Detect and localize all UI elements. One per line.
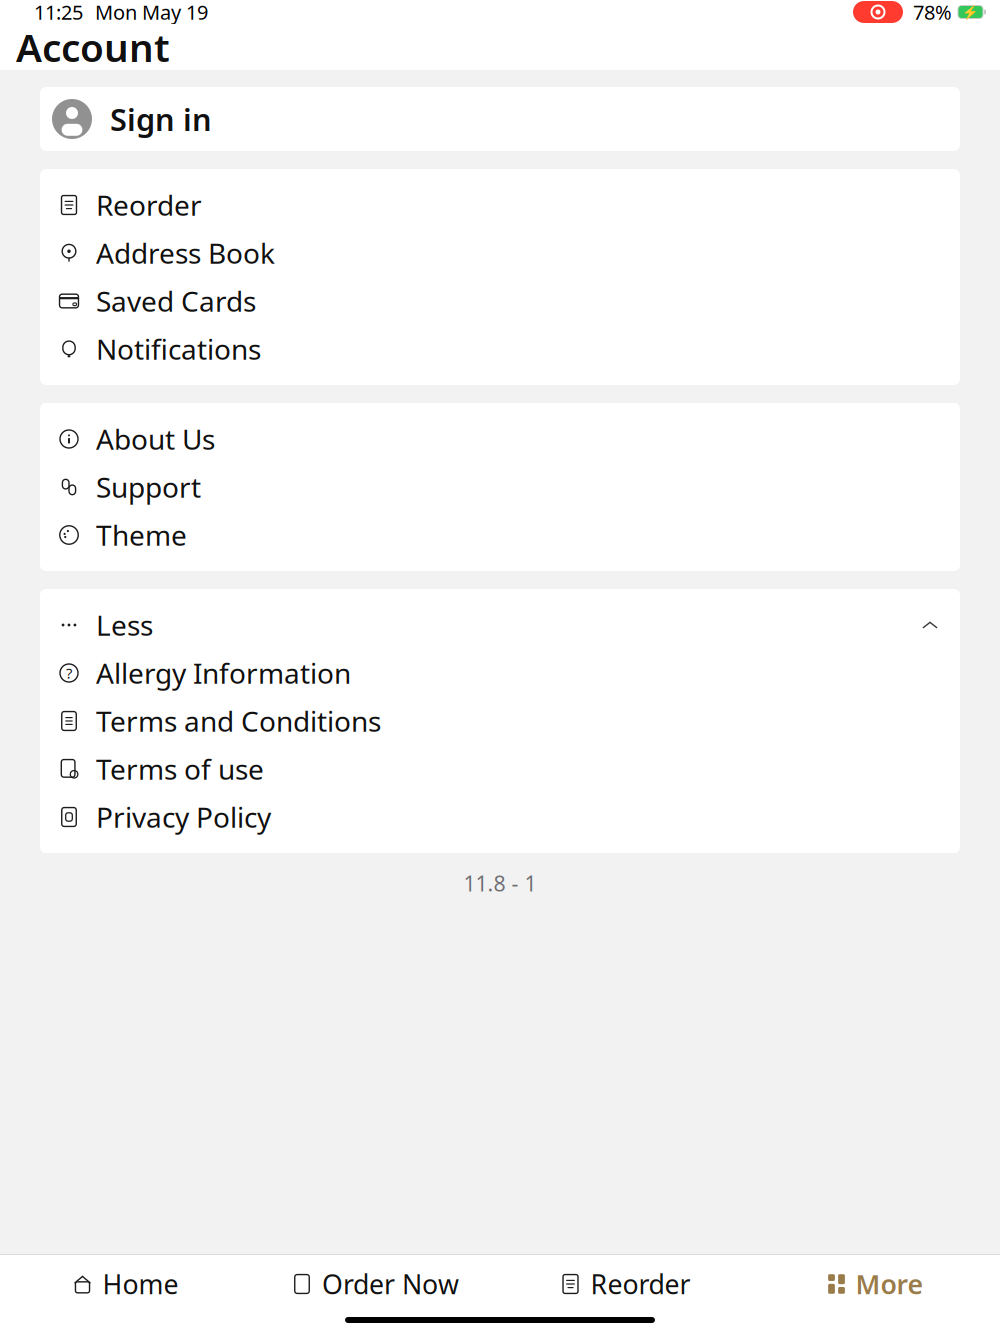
staticText: Privacy Policy	[96, 798, 271, 836]
staticText: Allergy Information	[96, 654, 351, 692]
button[interactable]: Less	[40, 601, 960, 649]
staticText: Terms and Conditions	[96, 702, 381, 740]
staticText: Address Book	[96, 234, 275, 272]
button[interactable]: Theme	[40, 511, 960, 559]
button[interactable]: Terms and Conditions	[40, 697, 960, 745]
staticText: 11.8 - 1	[463, 869, 536, 897]
button[interactable]: Privacy Policy	[40, 793, 960, 841]
staticText: 78%	[913, 0, 952, 25]
staticText: ?	[66, 663, 72, 683]
staticText: More	[855, 1266, 923, 1302]
staticText: Reorder	[96, 186, 202, 224]
staticText: Less	[96, 606, 153, 644]
button[interactable]: Order Now	[250, 1255, 500, 1313]
button[interactable]: Saved Cards	[40, 277, 960, 325]
button[interactable]: Terms of use	[40, 745, 960, 793]
staticText: Sign in	[110, 99, 212, 139]
button[interactable]: Reorder	[40, 181, 960, 229]
button[interactable]: Address Book	[40, 229, 960, 277]
button[interactable]: About Us	[40, 415, 960, 463]
staticText: About Us	[96, 420, 215, 458]
button[interactable]: Support	[40, 463, 960, 511]
staticText: Support	[96, 468, 201, 506]
staticText: ⚡	[962, 4, 979, 20]
staticText: Account	[16, 21, 170, 73]
staticText: Terms of use	[96, 750, 264, 788]
staticText: Saved Cards	[96, 282, 256, 320]
staticText: Reorder	[590, 1266, 690, 1302]
button[interactable]: ?	[40, 649, 960, 697]
staticText: Home	[102, 1266, 178, 1302]
button[interactable]: Sign in	[40, 87, 960, 151]
staticText: Mon May 19	[95, 0, 208, 25]
button[interactable]: More	[750, 1255, 1000, 1313]
staticText: 11:25	[34, 0, 83, 25]
button[interactable]: Notifications	[40, 325, 960, 373]
button[interactable]: Home	[0, 1255, 250, 1313]
staticText: Notifications	[96, 330, 261, 368]
staticText: Theme	[96, 516, 187, 554]
button[interactable]: Reorder	[500, 1255, 750, 1313]
staticText: Order Now	[322, 1266, 459, 1302]
